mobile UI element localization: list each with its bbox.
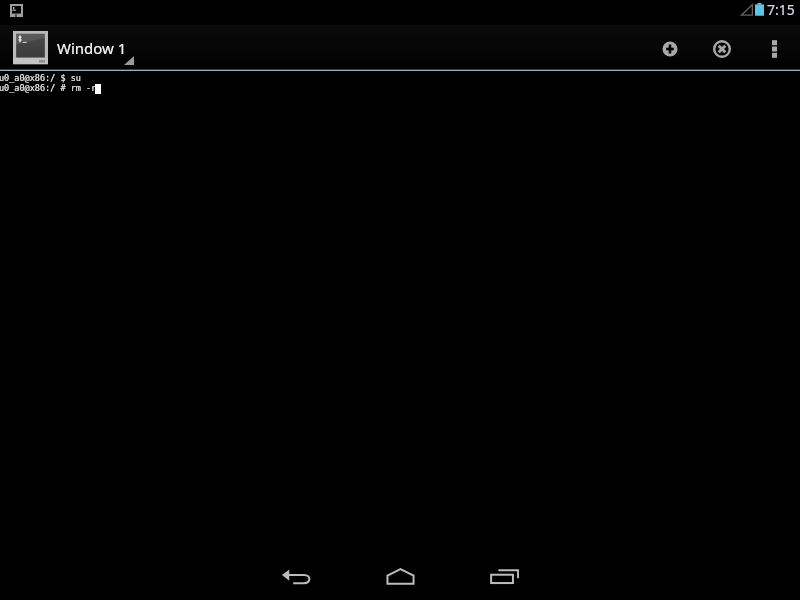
button[interactable]: Close window: [696, 25, 748, 69]
staticText: 7:15: [767, 0, 795, 19]
button[interactable]: New window: [644, 25, 696, 69]
staticText: u0_a0@x86:/ # rm -r: [0, 83, 97, 93]
button[interactable]: Home: [348, 552, 452, 600]
staticText: u0_a0@x86:/ $ su: [0, 73, 81, 83]
button[interactable]: Window 1: [0, 25, 140, 69]
button[interactable]: Back: [244, 552, 348, 600]
button[interactable]: Recent apps: [452, 552, 556, 600]
staticText: Window 1: [57, 38, 127, 58]
button[interactable]: More options: [748, 25, 800, 69]
